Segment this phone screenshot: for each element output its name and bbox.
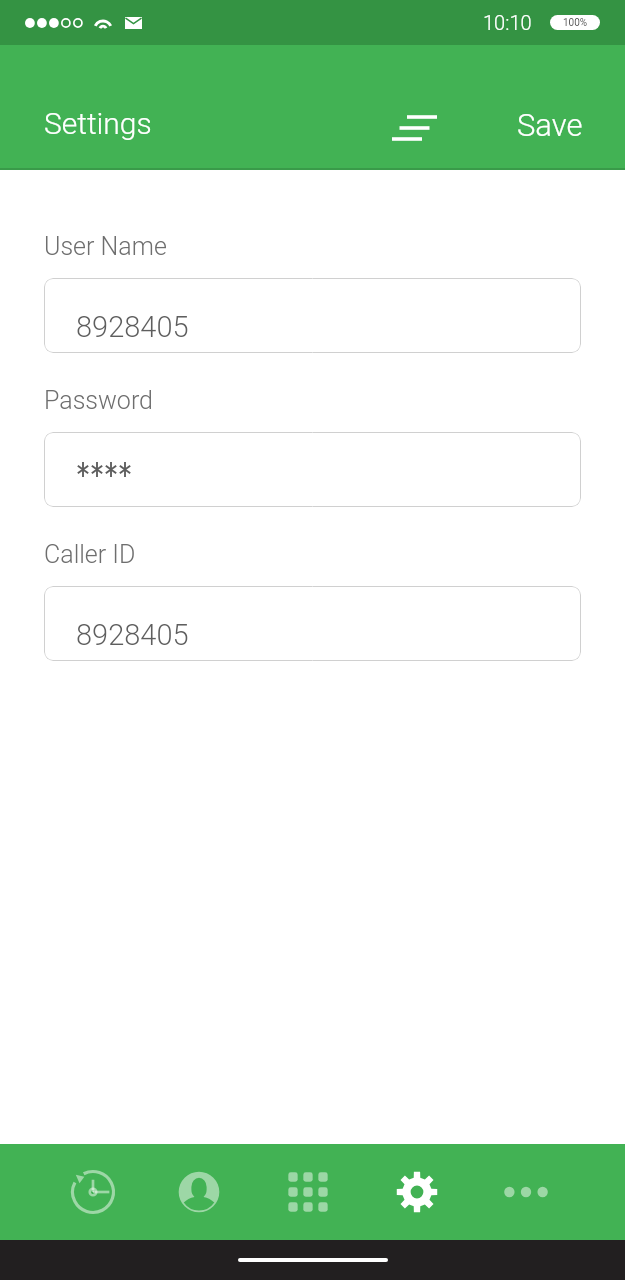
button[interactable] bbox=[44, 432, 581, 507]
button[interactable]: Keypad bbox=[253, 1144, 362, 1240]
button[interactable]: Settings bbox=[362, 1144, 471, 1240]
staticText: 100% bbox=[563, 17, 588, 29]
button[interactable]: 8928405 bbox=[44, 586, 581, 661]
button[interactable]: Call history bbox=[35, 1144, 144, 1240]
button[interactable]: 8928405 bbox=[44, 278, 581, 353]
staticText: 10:10 bbox=[483, 11, 532, 34]
button[interactable]: Sort order bbox=[381, 106, 451, 150]
button[interactable]: Save bbox=[517, 107, 583, 143]
staticText: 8928405 bbox=[76, 618, 189, 652]
staticText: 8928405 bbox=[76, 310, 189, 344]
staticText: Settings bbox=[44, 106, 152, 141]
staticText: Password bbox=[44, 386, 153, 415]
staticText: User Name bbox=[44, 232, 167, 261]
button[interactable]: More bbox=[471, 1144, 580, 1240]
button[interactable]: Contacts bbox=[144, 1144, 253, 1240]
button[interactable]: Settings bbox=[44, 106, 152, 141]
staticText: Save bbox=[517, 107, 583, 143]
staticText: Caller ID bbox=[44, 540, 136, 569]
